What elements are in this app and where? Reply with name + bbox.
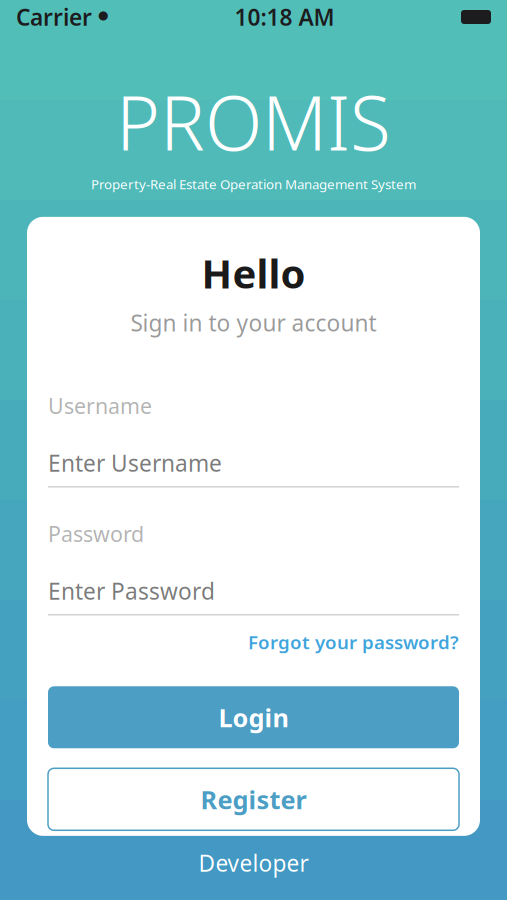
- button[interactable]: Forgot your password?: [248, 629, 459, 654]
- staticText: Register: [200, 782, 306, 816]
- staticText: ●: [98, 8, 108, 22]
- staticText: Carrier: [16, 2, 92, 32]
- staticText: Login: [218, 700, 288, 734]
- staticText: 10:18 AM: [234, 2, 334, 32]
- staticText: Property-Real Estate Operation Managemen…: [91, 175, 416, 193]
- staticText: Hello: [201, 246, 305, 299]
- staticText: Enter Password: [48, 576, 215, 606]
- staticText: Enter Username: [48, 448, 222, 478]
- button[interactable]: Login: [48, 686, 459, 748]
- staticText: Username: [48, 392, 152, 420]
- staticText: Forgot your password?: [248, 629, 459, 654]
- button[interactable]: Register: [48, 768, 459, 830]
- staticText: Sign in to your account: [130, 307, 376, 338]
- staticText: PROMIS: [116, 72, 391, 171]
- staticText: Password: [48, 520, 144, 548]
- staticText: Developer: [198, 848, 308, 878]
